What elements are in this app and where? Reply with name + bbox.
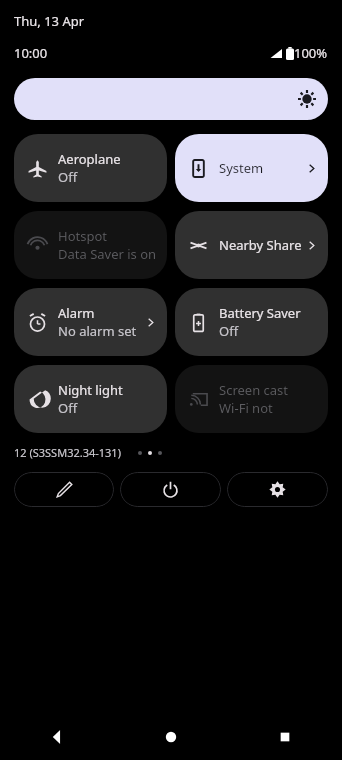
button[interactable]: Hotspot	[14, 211, 167, 279]
button[interactable]: Settings	[227, 472, 328, 507]
staticText: No alarm set	[58, 322, 137, 340]
button[interactable]: Aeroplane mode	[14, 134, 167, 202]
staticText: Alarm	[58, 304, 95, 322]
button[interactable]: Nearby Share	[175, 211, 328, 279]
button[interactable]: System update	[175, 134, 328, 202]
staticText: Night light	[58, 381, 123, 399]
staticText: Data Saver is on	[58, 245, 157, 263]
button[interactable]: Night light	[14, 365, 167, 433]
staticText: Screen cast	[219, 381, 289, 399]
staticText: System update	[219, 159, 303, 177]
button[interactable]: Screen cast	[175, 365, 328, 433]
staticText: Hotspot	[58, 227, 107, 245]
staticText: Nearby Share	[219, 236, 302, 254]
staticText: Off	[58, 399, 78, 417]
button[interactable]: Recents	[228, 714, 342, 760]
button[interactable]: Brightness	[14, 78, 328, 120]
button[interactable]: Alarm	[14, 288, 167, 356]
button[interactable]: Battery Saver	[175, 288, 328, 356]
staticText: Battery Saver	[219, 304, 301, 322]
staticText: 10:00	[14, 44, 48, 62]
button[interactable]: Edit tiles	[14, 472, 114, 507]
staticText: Off	[219, 322, 239, 340]
staticText: 100%	[294, 44, 328, 62]
staticText: Wi-Fi not connected	[219, 399, 318, 417]
staticText: Thu, 13 Apr	[14, 12, 85, 30]
button[interactable]: Home	[114, 714, 228, 760]
button[interactable]: Power	[120, 472, 221, 507]
staticText: Aeroplane mode	[58, 150, 157, 168]
staticText: Off	[58, 168, 78, 186]
button[interactable]: Back	[0, 714, 114, 760]
staticText: 12 (S3SSM32.34-131)	[14, 445, 121, 460]
